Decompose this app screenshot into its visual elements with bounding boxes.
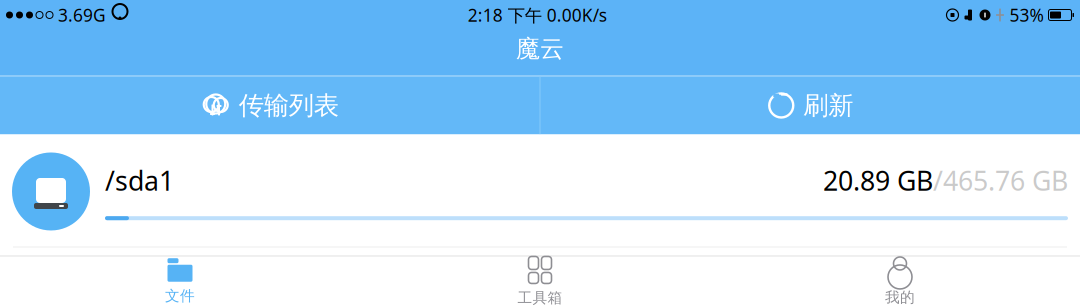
staticText: 传输列表 [239,90,339,121]
staticText: 刷新 [803,90,853,121]
staticText: 工具箱 [517,289,562,307]
staticText: 我的 [885,288,915,306]
staticText: 文件 [165,287,195,305]
button[interactable]: 文件 [0,252,360,307]
staticText: 53% [1009,3,1043,26]
button[interactable]: 工具箱 [360,250,720,307]
staticText: 3.69G [58,3,106,26]
staticText: 20.89 GB [823,163,933,198]
button[interactable]: 我的 [720,250,1080,307]
staticText: /sda1 [105,163,174,198]
staticText: 2:18 下午 0.00K/s [468,3,607,26]
button[interactable]: 刷新 [540,76,1080,134]
button[interactable]: /sda1 [0,134,1080,246]
staticText: /465.76 GB [933,163,1068,198]
button[interactable]: 传输列表 [0,76,539,134]
staticText: 魔云 [516,34,564,63]
